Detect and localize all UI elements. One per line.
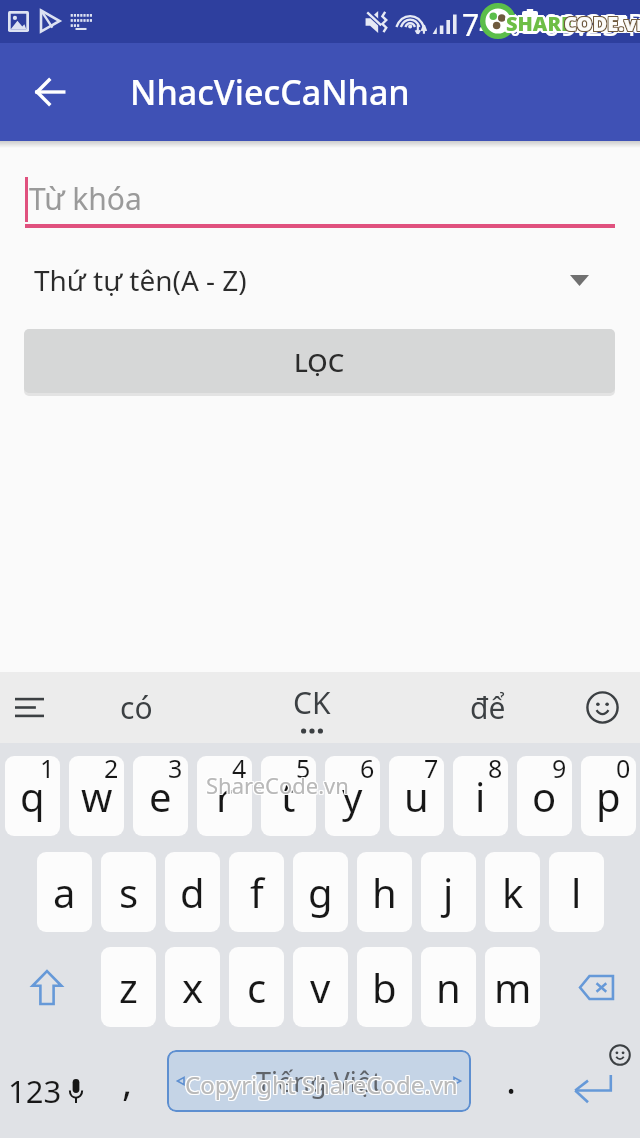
staticText: SHARECODE.vn xyxy=(505,9,640,36)
staticText: SHARECODE.vn xyxy=(504,10,640,37)
button[interactable]: z xyxy=(101,947,156,1027)
staticText: g xyxy=(308,865,333,919)
button[interactable]: Emoji xyxy=(564,672,640,743)
staticText: 9 xyxy=(552,756,567,785)
button[interactable]: o xyxy=(517,756,572,836)
staticText: m xyxy=(494,960,532,1014)
button[interactable]: r xyxy=(197,756,252,836)
button[interactable]: d xyxy=(165,852,220,932)
staticText: ShareCode.vn xyxy=(206,769,349,799)
staticText: Copyright ShareCode.vn xyxy=(186,1069,459,1102)
staticText: SHARECODE.vn xyxy=(505,11,640,38)
button[interactable]: j xyxy=(421,852,476,932)
button[interactable]: Shift xyxy=(6,947,88,1027)
button[interactable]: . xyxy=(484,1040,539,1138)
staticText: w xyxy=(81,769,113,823)
button[interactable]: f xyxy=(229,852,284,932)
button[interactable]: có xyxy=(86,672,186,743)
staticText: có xyxy=(120,687,153,728)
button[interactable]: LỌC xyxy=(24,329,615,393)
staticText: SHARECODE.vn xyxy=(507,8,640,35)
button[interactable]: h xyxy=(357,852,412,932)
button[interactable]: b xyxy=(357,947,412,1027)
staticText: CODE.vn xyxy=(565,9,640,36)
button[interactable]: l xyxy=(549,852,604,932)
button[interactable]: Keyword search field xyxy=(25,166,615,228)
staticText: ShareCode.vn xyxy=(207,770,350,800)
button[interactable]: s xyxy=(101,852,156,932)
staticText: 3 xyxy=(168,756,183,785)
staticText: . xyxy=(506,1053,517,1105)
staticText: t xyxy=(281,769,296,823)
button[interactable]: Tiếng Việt xyxy=(167,1050,471,1112)
button[interactable]: e xyxy=(133,756,188,836)
staticText: SHARECODE.vn xyxy=(504,9,640,36)
staticText: CODE.vn xyxy=(563,11,640,38)
staticText: SHARE xyxy=(506,10,572,37)
button[interactable]: a xyxy=(37,852,92,932)
button[interactable]: Back xyxy=(0,43,100,141)
staticText: SHARECODE.vn xyxy=(507,10,640,37)
staticText: d xyxy=(180,865,205,919)
staticText: ShareCode.vn xyxy=(207,769,350,799)
staticText: 123 xyxy=(8,1070,62,1112)
staticText: SHARECODE.vn xyxy=(505,12,640,39)
button[interactable]: Numbers and voice input xyxy=(0,1040,96,1138)
staticText: x xyxy=(182,960,204,1014)
button[interactable]: v xyxy=(293,947,348,1027)
staticText: ShareCode.vn xyxy=(206,770,349,800)
button[interactable]: i xyxy=(453,756,508,836)
button[interactable]: w xyxy=(69,756,124,836)
staticText: 6 xyxy=(360,756,375,785)
staticText: SHARECODE.vn xyxy=(506,8,640,35)
staticText: SHARECODE.vn xyxy=(506,9,640,36)
button[interactable]: để xyxy=(438,672,538,743)
staticText: SHARECODE.vn xyxy=(506,12,640,39)
staticText: n xyxy=(436,960,461,1014)
button[interactable]: Backspace xyxy=(555,947,637,1027)
staticText: SHARECODE.vn xyxy=(508,9,640,36)
staticText: ShareCode.vn xyxy=(205,770,348,800)
staticText: ShareCode.vn xyxy=(205,771,348,801)
button[interactable]: k xyxy=(485,852,540,932)
button[interactable]: Sort order xyxy=(0,245,640,315)
button[interactable]: x xyxy=(165,947,220,1027)
staticText: CODE.vn xyxy=(564,10,640,37)
staticText: SHARECODE.vn xyxy=(505,8,640,35)
staticText: l xyxy=(571,865,582,919)
button[interactable]: Keyboard menu xyxy=(0,672,58,743)
staticText: p xyxy=(596,769,621,823)
staticText: 1 xyxy=(40,756,55,785)
staticText: Copyright ShareCode.vn xyxy=(185,1069,458,1102)
staticText: Copyright ShareCode.vn xyxy=(185,1068,458,1101)
button[interactable]: c xyxy=(229,947,284,1027)
staticText: CODE.vn xyxy=(563,9,640,36)
staticText: h xyxy=(372,865,397,919)
staticText: e xyxy=(149,769,172,823)
button[interactable]: CK xyxy=(262,672,362,743)
staticText: s xyxy=(119,865,139,919)
staticText: Thứ tự tên(A - Z) xyxy=(34,261,247,299)
staticText: CODE.vn xyxy=(565,10,640,37)
staticText: 5 xyxy=(296,756,311,785)
staticText: Copyright ShareCode.vn xyxy=(184,1068,457,1101)
button[interactable]: m xyxy=(485,947,540,1027)
staticText: ShareCode.vn xyxy=(207,771,350,801)
button[interactable]: Enter xyxy=(548,1040,636,1138)
staticText: CODE.vn xyxy=(563,10,640,37)
button[interactable]: t xyxy=(261,756,316,836)
button[interactable]: g xyxy=(293,852,348,932)
staticText: 2 xyxy=(104,756,119,785)
button[interactable]: , xyxy=(100,1040,155,1138)
staticText: SHARECODE.vn xyxy=(508,11,640,38)
staticText: z xyxy=(119,960,138,1014)
button[interactable]: u xyxy=(389,756,444,836)
staticText: CODE.vn xyxy=(564,9,640,36)
staticText: i xyxy=(475,769,486,823)
button[interactable]: q xyxy=(5,756,60,836)
button[interactable]: n xyxy=(421,947,476,1027)
staticText: u xyxy=(404,769,429,823)
button[interactable]: y xyxy=(325,756,380,836)
button[interactable]: Emoji xyxy=(605,1040,635,1070)
button[interactable]: p xyxy=(581,756,636,836)
